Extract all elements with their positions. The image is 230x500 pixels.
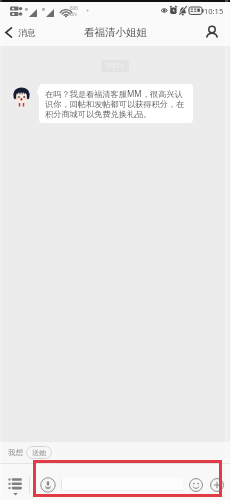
staticText: 送她	[32, 448, 46, 457]
staticText: 在吗？我是看福清客服MM，很高兴认识你，回帖和发帖都可以获得积分，在积分商城可以…	[45, 88, 187, 119]
button[interactable]: Contact profile	[201, 19, 223, 46]
staticText: 606	[70, 5, 78, 11]
staticText: 消息	[18, 27, 36, 38]
staticText: 看福清小姐姐	[84, 26, 147, 39]
button[interactable]: 送她	[26, 446, 52, 459]
button[interactable]: Emoji	[187, 476, 205, 494]
button[interactable]: Add attachment	[208, 476, 226, 494]
staticText: 10:11	[106, 61, 124, 71]
button[interactable]: Voice message	[39, 476, 56, 493]
button[interactable]	[61, 478, 183, 491]
button[interactable]: 消息	[0, 21, 42, 44]
staticText: 我想	[8, 448, 23, 457]
staticText: 10:15	[204, 6, 224, 16]
button[interactable]: Quick replies	[0, 469, 29, 500]
staticText: B/s	[70, 11, 77, 17]
